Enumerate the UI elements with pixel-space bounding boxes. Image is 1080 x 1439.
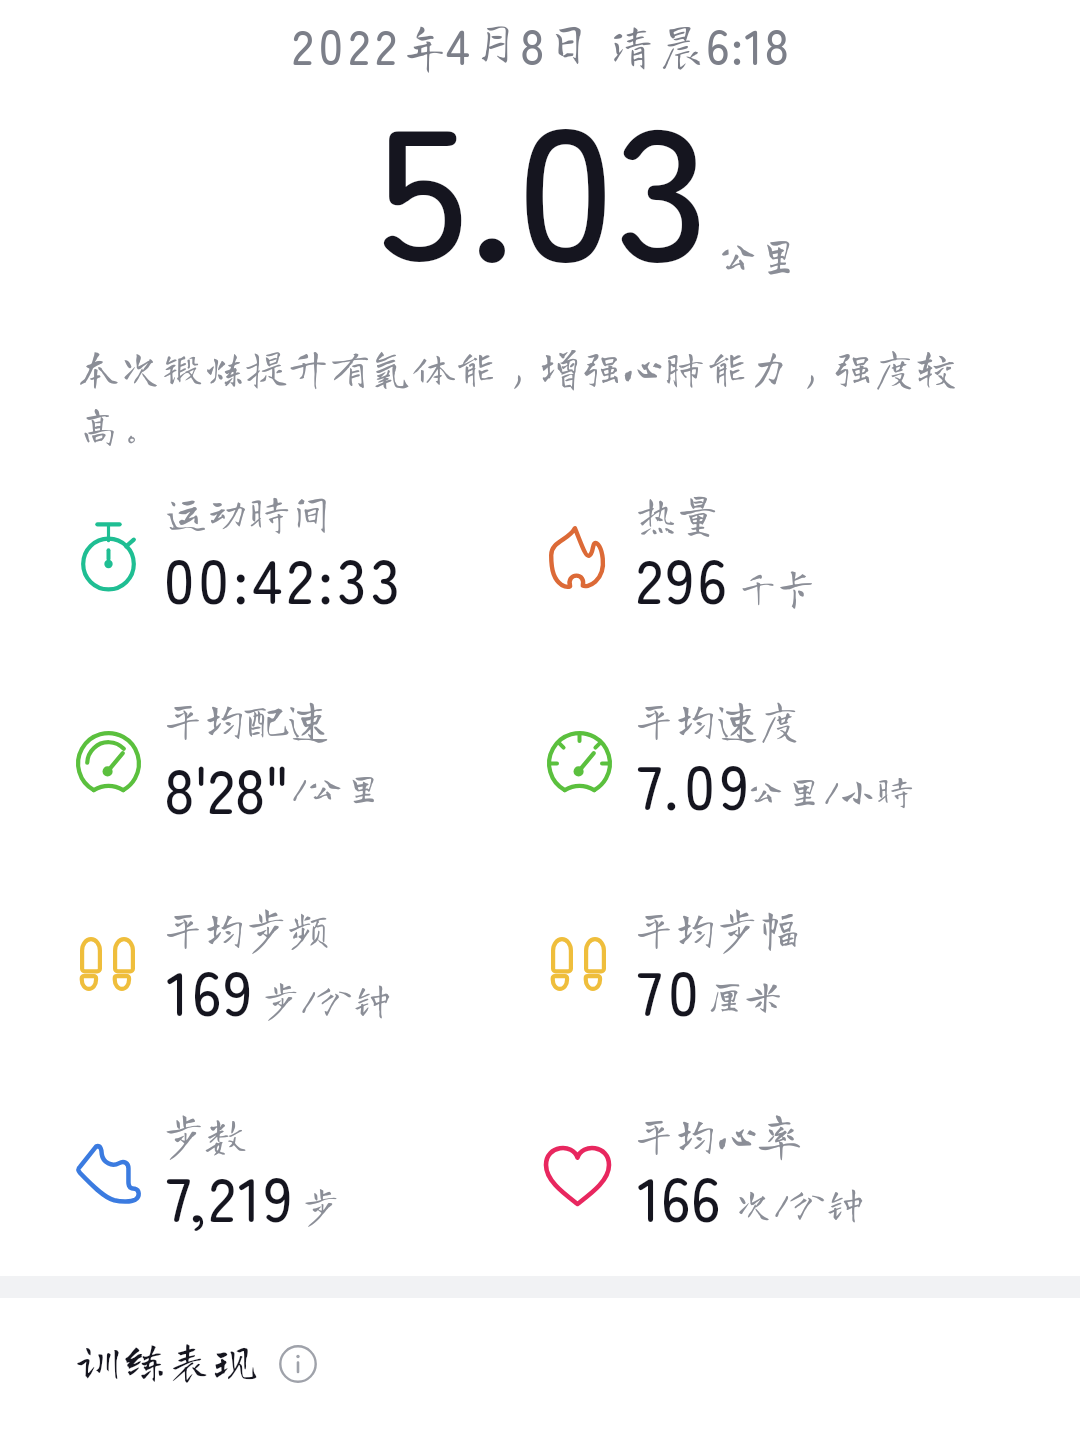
staticText: 平均配速 [162, 695, 329, 742]
staticText: 平均步频 [162, 904, 329, 951]
staticText: 70 [637, 946, 705, 1033]
staticText: 次/分钟 [735, 1183, 865, 1223]
staticText: 2022 [292, 9, 403, 79]
staticText: 6:18 [706, 9, 791, 79]
staticText: 步 [302, 1185, 340, 1225]
button[interactable]: Average stride [545, 891, 968, 1025]
staticText: 7,219 [166, 1152, 295, 1239]
staticText: 5.03 [376, 46, 709, 314]
staticText: 日 [544, 14, 593, 69]
staticText: 月 [471, 13, 520, 68]
button[interactable]: Average cadence [74, 891, 497, 1025]
staticText: 千卡 [739, 567, 815, 607]
staticText: 清晨 [608, 20, 707, 69]
button[interactable]: Average heart rate [538, 1097, 968, 1231]
staticText: 169 [166, 946, 255, 1033]
staticText: 公里 [718, 228, 799, 279]
button[interactable]: Calories [543, 479, 968, 613]
button[interactable]: Average speed [541, 685, 968, 819]
button[interactable]: Steps [71, 1097, 497, 1231]
button[interactable]: Duration [72, 479, 497, 613]
staticText: 本次锻炼提升有氧体能，增强心肺能力，强度较高。 [78, 344, 975, 446]
staticText: 8 [520, 9, 545, 79]
staticText: 训练表现 [75, 1337, 260, 1382]
staticText: 平均心率 [633, 1110, 800, 1157]
staticText: 运动时间 [165, 488, 332, 535]
staticText: 厘米 [706, 975, 782, 1015]
staticText: 296 [636, 534, 731, 621]
staticText: 年 [404, 22, 447, 70]
staticText: 步数 [163, 1110, 247, 1157]
staticText: 4 [446, 9, 470, 79]
staticText: 公里/小时 [747, 770, 915, 810]
staticText: 热量 [635, 489, 719, 536]
button[interactable]: Training performance info [279, 1345, 317, 1383]
staticText: 8'28" [164, 744, 289, 831]
staticText: 平均速度 [633, 695, 800, 742]
staticText: 平均步幅 [633, 904, 800, 951]
staticText: 00:42:33 [164, 534, 405, 621]
staticText: 166 [637, 1152, 721, 1239]
staticText: /公里 [291, 767, 383, 807]
button[interactable] [64, 1328, 272, 1400]
staticText: 步/分钟 [262, 979, 392, 1019]
staticText: 7.09 [637, 740, 755, 827]
button[interactable]: Average pace [70, 685, 497, 819]
